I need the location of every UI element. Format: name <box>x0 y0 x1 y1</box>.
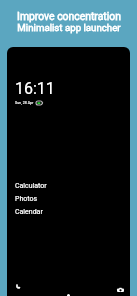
button[interactable]: Phone <box>11 280 24 293</box>
button[interactable]: Photos <box>7 192 130 205</box>
staticText: Photos <box>15 195 38 203</box>
staticText: 16:11 <box>15 79 55 98</box>
staticText: Improve concentration <box>17 10 121 22</box>
button[interactable]: Calculator <box>7 179 130 192</box>
button[interactable]: Camera <box>114 283 127 296</box>
staticText: Calendar <box>15 208 43 216</box>
staticText: Minimalist app launcher <box>17 22 121 33</box>
button[interactable]: Calendar <box>7 205 130 218</box>
staticText: Calculator <box>15 182 47 190</box>
staticText: Sun, 28 Apr <box>15 101 34 105</box>
